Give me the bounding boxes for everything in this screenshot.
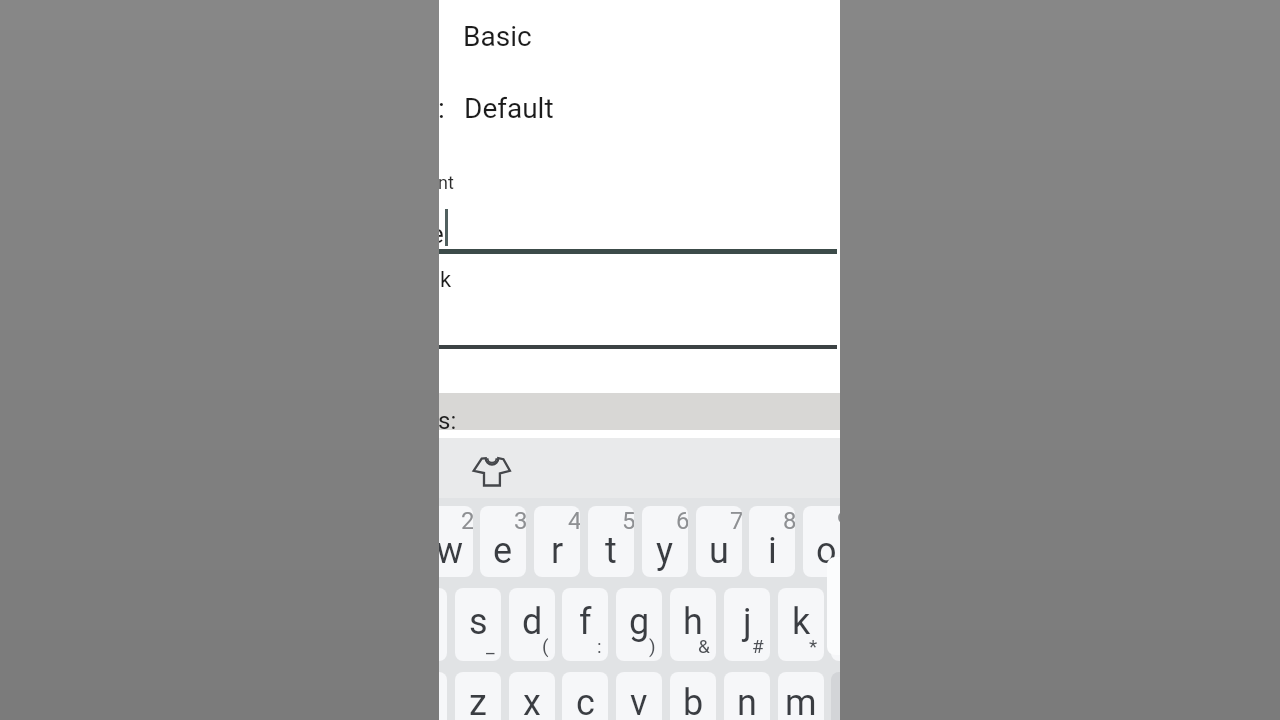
- button[interactable]: [465, 451, 519, 497]
- button[interactable]: e: [439, 205, 840, 253]
- button[interactable]: w: [439, 506, 473, 577]
- staticText: 9: [837, 507, 840, 535]
- staticText: 3: [514, 507, 526, 535]
- button[interactable]: f: [562, 588, 608, 661]
- staticText: t: [605, 530, 617, 572]
- staticText: e: [493, 530, 513, 572]
- button[interactable]: r: [534, 506, 580, 577]
- button[interactable]: j: [724, 588, 770, 661]
- staticText: c: [576, 682, 595, 720]
- button[interactable]: e: [480, 506, 526, 577]
- button[interactable]: m: [778, 672, 824, 720]
- button[interactable]: k: [778, 588, 824, 661]
- button[interactable]: b: [670, 672, 716, 720]
- staticText: i: [768, 530, 777, 572]
- staticText: 5: [622, 507, 634, 535]
- staticText: 6: [676, 507, 688, 535]
- button[interactable]: t: [588, 506, 634, 577]
- button[interactable]: [439, 672, 447, 720]
- staticText: m: [785, 682, 817, 720]
- staticText: u: [709, 530, 729, 572]
- button[interactable]: a: [439, 588, 447, 661]
- button[interactable]: s: [455, 588, 501, 661]
- staticText: 7: [730, 507, 742, 535]
- staticText: :: [439, 92, 445, 125]
- staticText: h: [683, 601, 703, 643]
- staticText: e: [439, 219, 444, 249]
- button[interactable]: [439, 300, 840, 349]
- button[interactable]: d: [509, 588, 555, 661]
- button[interactable]: y: [642, 506, 688, 577]
- staticText: nt: [439, 172, 454, 193]
- staticText: f: [579, 601, 592, 643]
- staticText: 2: [461, 507, 473, 535]
- staticText: &: [698, 635, 710, 657]
- staticText: k: [440, 267, 452, 293]
- staticText: z: [469, 682, 487, 720]
- staticText: #: [752, 635, 764, 657]
- staticText: :: [597, 635, 602, 657]
- button[interactable]: g: [616, 588, 662, 661]
- staticText: k: [792, 601, 811, 643]
- staticText: o: [816, 530, 837, 572]
- button[interactable]: n: [724, 672, 770, 720]
- staticText: w: [439, 530, 464, 572]
- staticText: b: [683, 682, 704, 720]
- staticText: s:: [439, 407, 457, 435]
- button[interactable]: c: [562, 672, 608, 720]
- staticText: d: [522, 601, 543, 643]
- staticText: y: [656, 530, 674, 572]
- button[interactable]: u: [696, 506, 742, 577]
- staticText: 4: [568, 507, 580, 535]
- button[interactable]: h: [670, 588, 716, 661]
- staticText: v: [630, 682, 648, 720]
- button[interactable]: x: [509, 672, 555, 720]
- staticText: g: [629, 601, 650, 643]
- button[interactable]: i: [749, 506, 795, 577]
- staticText: s: [469, 601, 488, 643]
- staticText: n: [737, 682, 757, 720]
- staticText: (: [542, 635, 549, 657]
- staticText: _: [486, 635, 495, 657]
- staticText: Basic: [463, 20, 532, 53]
- button[interactable]: z: [455, 672, 501, 720]
- button[interactable]: l: [831, 588, 840, 661]
- staticText: 8: [783, 507, 795, 535]
- staticText: Default: [464, 92, 554, 125]
- button[interactable]: o: [803, 506, 840, 577]
- staticText: *: [809, 635, 818, 657]
- staticText: ): [649, 635, 656, 657]
- staticText: j: [743, 601, 752, 643]
- staticText: x: [523, 682, 541, 720]
- button[interactable]: v: [616, 672, 662, 720]
- staticText: r: [551, 530, 564, 572]
